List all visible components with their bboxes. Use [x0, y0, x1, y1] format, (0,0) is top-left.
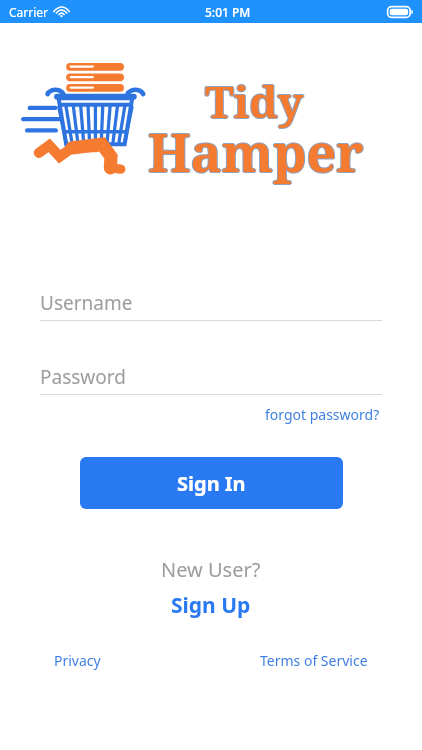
staticText: Hamper: [148, 116, 364, 187]
button[interactable]: Password: [40, 360, 382, 395]
button[interactable]: Sign Up: [163, 589, 259, 622]
other: Battery full: [387, 6, 414, 18]
staticText: Hamper: [148, 115, 364, 186]
other: Wi-Fi signal: [54, 6, 69, 17]
staticText: Sign Up: [171, 591, 251, 620]
staticText: Tidy: [205, 72, 304, 132]
staticText: Hamper: [149, 116, 365, 187]
staticText: Carrier: [9, 4, 49, 20]
button[interactable]: Terms of Service: [256, 648, 372, 673]
button[interactable]: Privacy: [50, 648, 105, 673]
staticText: Terms of Service: [260, 651, 368, 670]
staticText: Password: [40, 364, 126, 390]
staticText: forgot password?: [265, 405, 380, 424]
staticText: Sign In: [177, 470, 246, 497]
staticText: 5:01 PM: [205, 4, 251, 20]
staticText: Tidy: [204, 71, 303, 131]
staticText: Hamper: [147, 116, 363, 187]
staticText: Hamper: [148, 117, 364, 188]
staticText: New User?: [161, 556, 261, 583]
button[interactable]: forgot password?: [263, 403, 382, 426]
button[interactable]: Sign In: [80, 457, 343, 509]
staticText: Tidy: [205, 71, 304, 131]
staticText: Tidy: [205, 70, 304, 130]
staticText: Privacy: [54, 651, 101, 670]
staticText: Tidy: [206, 71, 305, 131]
button[interactable]: Username: [40, 286, 382, 321]
staticText: Username: [40, 290, 133, 316]
